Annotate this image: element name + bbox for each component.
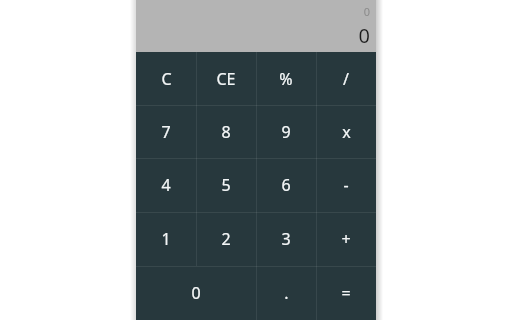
button[interactable]: 8 [196, 105, 256, 158]
staticText: 1 [161, 228, 171, 250]
staticText: - [343, 174, 349, 196]
staticText: 3 [281, 228, 291, 250]
button[interactable]: = [316, 266, 376, 320]
staticText: = [341, 282, 351, 304]
staticText: 4 [161, 174, 171, 196]
staticText: 7 [161, 121, 171, 143]
button[interactable]: + [316, 212, 376, 266]
staticText: 0 [191, 282, 201, 304]
staticText: % [279, 68, 293, 90]
staticText: 5 [221, 174, 231, 196]
button[interactable]: 0 [136, 0, 376, 52]
button[interactable]: 6 [256, 158, 316, 212]
button[interactable]: 0 [136, 266, 256, 320]
button[interactable]: 7 [136, 105, 196, 158]
staticText: 8 [221, 121, 231, 143]
staticText: CE [216, 68, 236, 90]
button[interactable]: C [136, 52, 196, 105]
staticText: 0 [358, 22, 370, 49]
button[interactable]: . [256, 266, 316, 320]
button[interactable]: CE [196, 52, 256, 105]
button[interactable]: 4 [136, 158, 196, 212]
staticText: / [343, 68, 349, 90]
staticText: . [284, 282, 289, 304]
button[interactable]: 9 [256, 105, 316, 158]
button[interactable]: / [316, 52, 376, 105]
button[interactable]: 3 [256, 212, 316, 266]
staticText: + [341, 228, 351, 250]
button[interactable]: 5 [196, 158, 256, 212]
button[interactable]: x [316, 105, 376, 158]
button[interactable]: 2 [196, 212, 256, 266]
button[interactable]: - [316, 158, 376, 212]
staticText: 0 [363, 4, 370, 19]
staticText: C [161, 68, 172, 90]
button[interactable]: % [256, 52, 316, 105]
button[interactable]: 1 [136, 212, 196, 266]
staticText: x [342, 121, 351, 143]
staticText: 6 [281, 174, 291, 196]
staticText: 9 [281, 121, 291, 143]
staticText: 2 [221, 228, 231, 250]
